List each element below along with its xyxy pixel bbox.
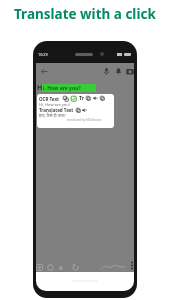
staticText: Tr — [79, 95, 84, 102]
button[interactable] — [36, 272, 134, 291]
staticText: Translated Text — [39, 107, 74, 113]
staticText: 10:29 — [38, 52, 48, 57]
staticText: translated by MLKittrans — [67, 118, 102, 122]
staticText: H — [37, 83, 43, 93]
staticText: A — [59, 264, 63, 271]
staticText: OCR Text — [39, 96, 60, 102]
staticText: हाय, कैसे हो आप? — [39, 113, 66, 118]
button[interactable]: OCR Text — [37, 94, 114, 128]
staticText: Translate with a click — [14, 5, 156, 23]
staticText: i, How are you? — [43, 85, 81, 92]
staticText: Hi, How are you? — [39, 102, 71, 107]
